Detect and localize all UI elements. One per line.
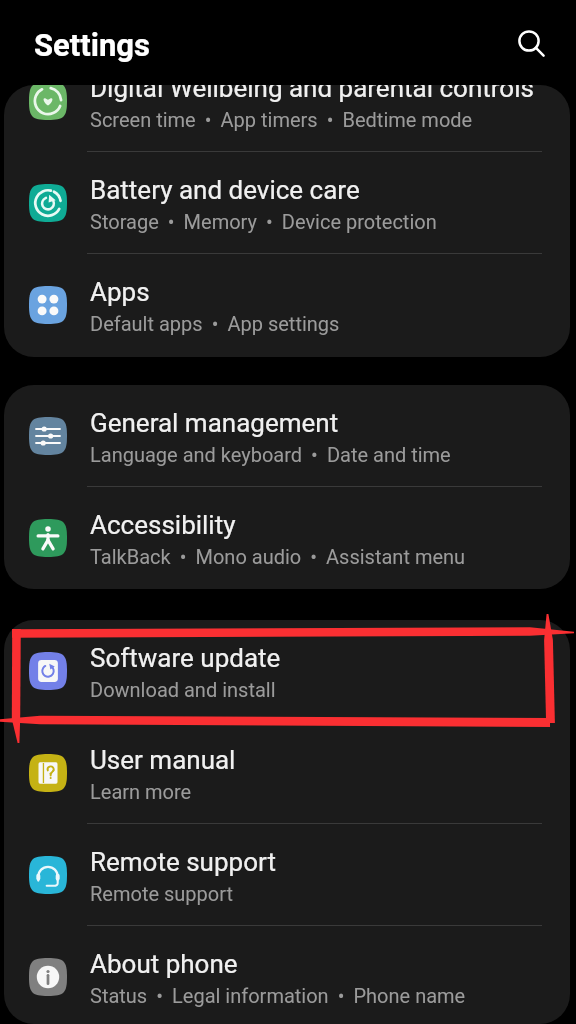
- staticText: General management: [90, 408, 339, 438]
- staticText: Software update: [90, 643, 281, 673]
- staticText: Remote support: [90, 847, 276, 877]
- button[interactable]: User manual: [4, 722, 570, 824]
- staticText: Remote support: [90, 882, 234, 905]
- staticText: Language and keyboard • Date and time: [90, 443, 451, 466]
- staticText: Learn more: [90, 780, 192, 803]
- staticText: Screen time • App timers • Bedtime mode: [90, 108, 473, 131]
- button[interactable]: Digital Wellbeing and parental controls: [4, 85, 570, 152]
- staticText: TalkBack • Mono audio • Assistant menu: [90, 545, 466, 568]
- staticText: Battery and device care: [90, 175, 360, 205]
- staticText: Status • Legal information • Phone name: [90, 984, 466, 1007]
- button[interactable]: Search: [503, 15, 559, 71]
- button[interactable]: Battery and device care: [4, 152, 570, 254]
- button[interactable]: About phone: [4, 926, 570, 1024]
- button[interactable]: Apps: [4, 254, 570, 356]
- staticText: Settings: [34, 27, 151, 63]
- staticText: Apps: [90, 277, 150, 307]
- button[interactable]: General management: [4, 385, 570, 487]
- staticText: About phone: [90, 949, 238, 979]
- button[interactable]: Software update: [4, 620, 570, 722]
- staticText: Digital Wellbeing and parental controls: [90, 85, 534, 103]
- button[interactable]: Accessibility: [4, 487, 570, 589]
- staticText: Accessibility: [90, 510, 236, 540]
- staticText: Default apps • App settings: [90, 312, 340, 335]
- staticText: Storage • Memory • Device protection: [90, 210, 437, 233]
- staticText: Download and install: [90, 678, 276, 701]
- button[interactable]: Remote support: [4, 824, 570, 926]
- staticText: User manual: [90, 745, 236, 775]
